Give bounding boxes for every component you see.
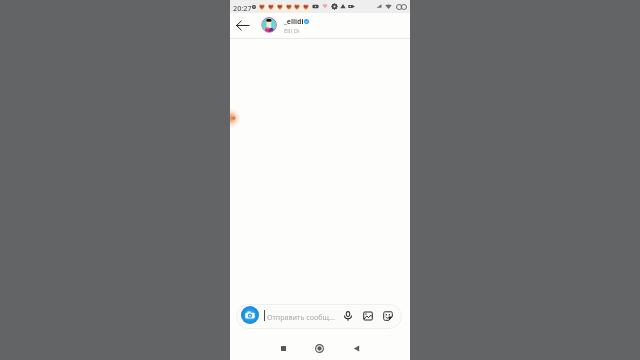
button[interactable]: Gallery [361, 309, 375, 323]
staticText: Отправить сообщ... [267, 312, 335, 322]
staticText: _ellidi [284, 17, 304, 26]
button[interactable]: Home [310, 339, 328, 357]
button[interactable]: _ellidi [284, 17, 374, 36]
button[interactable]: Voice message [341, 309, 355, 323]
button[interactable]: Back [236, 18, 250, 32]
button[interactable]: Back [347, 339, 365, 357]
staticText: 20:27 [233, 3, 252, 13]
button[interactable]: Camera [241, 306, 259, 324]
staticText: Elli Di [284, 27, 300, 35]
button[interactable]: Stickers [381, 309, 395, 323]
button[interactable]: Recents [274, 339, 292, 357]
